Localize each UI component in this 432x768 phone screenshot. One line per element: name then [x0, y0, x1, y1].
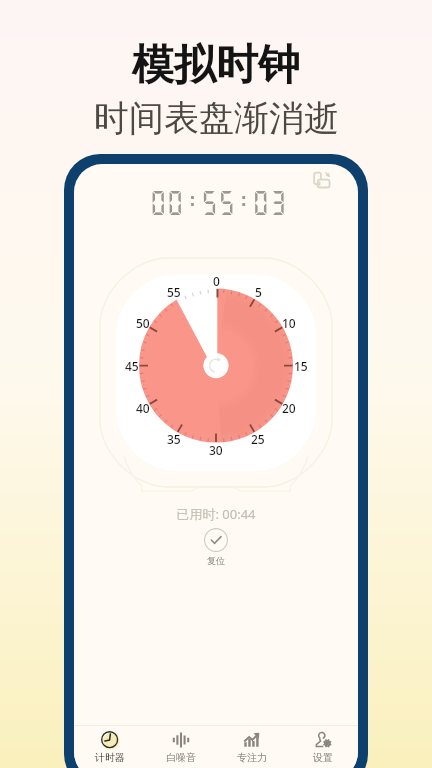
button[interactable]: 设置 [287, 726, 358, 768]
staticText: 20 [282, 400, 296, 416]
staticText: 时间表盘渐消逝 [94, 96, 339, 140]
staticText: 复位 [207, 555, 225, 566]
staticText: 设置 [313, 751, 333, 764]
staticText: 00:55:03 [83, 188, 353, 218]
button[interactable]: 白噪音 [145, 726, 216, 768]
staticText: 35 [167, 431, 181, 447]
button[interactable]: 专注力 [216, 726, 287, 768]
staticText: 已用时: 00:44 [74, 505, 358, 523]
staticText: 50 [136, 315, 150, 331]
staticText: 5 [255, 284, 262, 300]
staticText: 白噪音 [166, 751, 196, 764]
staticText: 25 [251, 431, 265, 447]
staticText: 专注力 [237, 751, 267, 764]
button[interactable]: Rotate screen [310, 168, 336, 194]
staticText: 55 [167, 284, 181, 300]
staticText: 30 [209, 442, 223, 458]
staticText: 模拟时钟 [132, 39, 300, 92]
button[interactable]: 计时器 [74, 726, 145, 768]
staticText: 40 [136, 400, 150, 416]
button[interactable]: Timer dial [96, 254, 336, 491]
staticText: 10 [282, 315, 296, 331]
staticText: 计时器 [95, 751, 125, 764]
button[interactable]: 复位 [196, 528, 236, 566]
staticText: 15 [294, 358, 308, 374]
staticText: 45 [125, 358, 139, 374]
staticText: 0 [213, 273, 220, 289]
